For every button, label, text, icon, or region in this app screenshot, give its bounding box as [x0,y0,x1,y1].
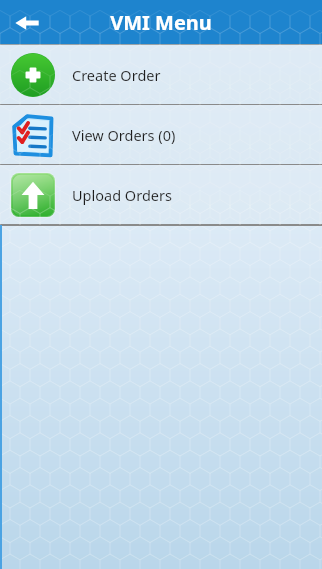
staticText: View Orders (0) [72,125,176,145]
button[interactable]: View Orders (0) [0,105,322,165]
staticText: VMI Menu [110,9,212,36]
staticText: Create Order [72,65,161,85]
button[interactable]: Upload Orders [0,165,322,225]
button[interactable]: Create Order [0,45,322,105]
staticText: Upload Orders [72,185,172,205]
button[interactable]: Back [12,10,42,36]
